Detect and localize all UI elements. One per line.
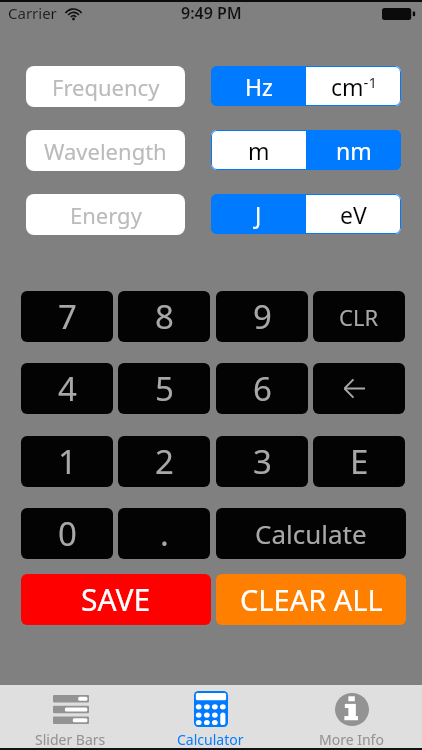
staticText: eV <box>340 199 367 230</box>
button[interactable]: 6 <box>216 363 308 414</box>
staticText: CLEAR ALL <box>240 580 383 619</box>
staticText: 3 <box>253 439 272 484</box>
button[interactable]: cm-1 <box>306 66 401 106</box>
button[interactable]: eV <box>306 194 401 234</box>
button[interactable]: Slider Bars <box>0 685 140 748</box>
staticText: 6 <box>253 366 272 411</box>
staticText: 9 <box>253 294 272 339</box>
button[interactable]: E <box>313 436 405 487</box>
staticText: 1 <box>58 439 77 484</box>
staticText: nm <box>336 135 372 166</box>
staticText: J <box>255 199 262 230</box>
staticText: 5 <box>155 366 174 411</box>
staticText: Hz <box>245 71 273 102</box>
staticText: 8 <box>155 294 174 339</box>
staticText: 9:49 PM <box>181 2 242 24</box>
button[interactable]: nm <box>306 130 401 170</box>
staticText: Slider Bars <box>35 730 106 749</box>
button[interactable]: CLR <box>313 291 405 342</box>
staticText: 0 <box>58 511 77 556</box>
button[interactable]: More Info <box>281 685 422 748</box>
button[interactable]: Hz <box>211 66 306 106</box>
button[interactable]: 1 <box>21 436 113 487</box>
button[interactable]: Backspace <box>313 363 405 414</box>
button[interactable]: J <box>211 194 306 234</box>
staticText: m <box>248 135 270 166</box>
staticText: Wavelength <box>44 136 167 166</box>
button[interactable]: Calculate <box>216 508 406 559</box>
staticText: . <box>160 511 169 556</box>
button[interactable]: 0 <box>21 508 113 559</box>
staticText: CLR <box>339 302 379 332</box>
button[interactable]: Calculator <box>140 685 281 748</box>
staticText: Calculate <box>255 516 367 551</box>
staticText: E <box>350 439 369 484</box>
staticText: Calculator <box>177 730 244 749</box>
button[interactable]: CLEAR ALL <box>216 574 406 625</box>
button[interactable]: 2 <box>118 436 210 487</box>
staticText: Carrier <box>8 3 57 23</box>
staticText: Energy <box>70 200 142 230</box>
button[interactable]: Wavelength <box>26 130 185 171</box>
button[interactable]: 5 <box>118 363 210 414</box>
button[interactable]: 3 <box>216 436 308 487</box>
button[interactable]: 9 <box>216 291 308 342</box>
button[interactable]: . <box>118 508 210 559</box>
staticText: 4 <box>58 366 77 411</box>
button[interactable]: 4 <box>21 363 113 414</box>
button[interactable]: 7 <box>21 291 113 342</box>
button[interactable]: Energy <box>26 194 185 235</box>
button[interactable]: SAVE <box>21 574 211 625</box>
button[interactable]: Frequency <box>26 66 185 107</box>
staticText: cm-1 <box>331 71 377 102</box>
staticText: More Info <box>319 730 384 749</box>
staticText: 2 <box>155 439 174 484</box>
staticText: SAVE <box>81 579 151 620</box>
button[interactable]: m <box>211 130 306 170</box>
staticText: 7 <box>58 294 77 339</box>
button[interactable]: 8 <box>118 291 210 342</box>
staticText: Frequency <box>52 72 160 102</box>
